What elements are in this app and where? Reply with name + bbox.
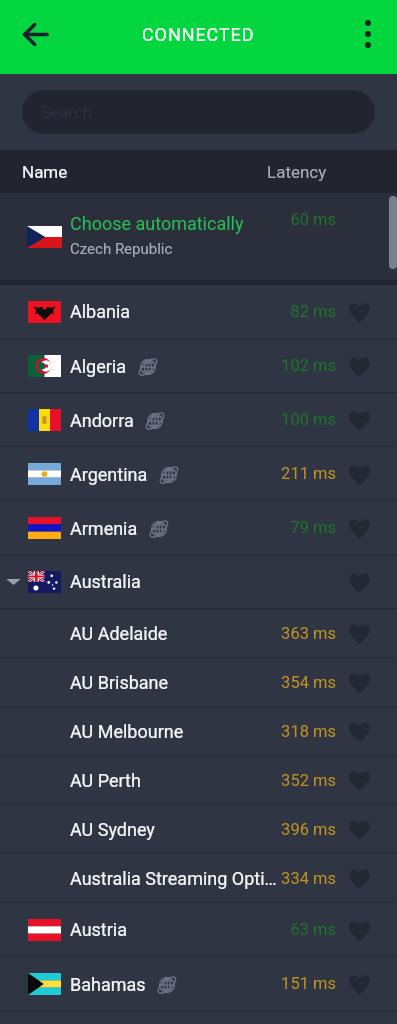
staticText: Czech Republic [70, 240, 173, 258]
staticText: Andorra [70, 410, 134, 431]
button[interactable]: AU Brisbane [0, 658, 397, 706]
staticText: Australia [70, 571, 141, 592]
staticText: 354 ms [281, 673, 336, 692]
button[interactable]: Search [22, 90, 375, 134]
staticText: Armenia [70, 518, 138, 539]
staticText: 63 ms [290, 920, 336, 939]
staticText: 82 ms [290, 302, 336, 321]
button[interactable]: Favorite [340, 859, 378, 897]
button[interactable]: Favorite [340, 293, 378, 331]
staticText: AU Adelaide [70, 623, 168, 644]
button[interactable]: AU Perth [0, 756, 397, 804]
staticText: 318 ms [281, 722, 336, 741]
button[interactable]: Favorite [340, 911, 378, 949]
staticText: Australia Streaming Optimi… [70, 868, 282, 889]
staticText: AU Sydney [70, 819, 155, 840]
staticText: 352 ms [281, 771, 336, 790]
button[interactable]: Favorite [340, 455, 378, 493]
staticText: 334 ms [281, 869, 336, 888]
button[interactable]: Favorite [340, 761, 378, 799]
staticText: Argentina [70, 464, 148, 485]
button[interactable]: Favorite [340, 965, 378, 1003]
staticText: 102 ms [281, 356, 336, 375]
staticText: Bahamas [70, 974, 146, 995]
staticText: 100 ms [281, 410, 336, 429]
button[interactable]: Favorite [340, 509, 378, 547]
button[interactable]: Choose automatically [0, 193, 397, 280]
button[interactable]: Favorite [340, 614, 378, 652]
button[interactable]: Bahamas [0, 957, 397, 1010]
staticText: 79 ms [290, 518, 336, 537]
staticText: 396 ms [281, 820, 336, 839]
button[interactable]: More options [344, 10, 392, 58]
staticText: Algeria [70, 356, 127, 377]
staticText: Search [40, 102, 93, 122]
button[interactable]: Albania [0, 285, 397, 338]
button[interactable]: Australia [0, 555, 397, 608]
button[interactable]: Australia Streaming Optimi… [0, 854, 397, 902]
staticText: CONNECTED [142, 24, 255, 45]
staticText: AU Perth [70, 770, 141, 791]
staticText: Albania [70, 301, 131, 322]
staticText: Choose automatically [70, 213, 244, 234]
staticText: AU Melbourne [70, 721, 184, 742]
button[interactable]: Favorite [340, 663, 378, 701]
button[interactable]: Back [11, 10, 59, 58]
button[interactable]: AU Sydney [0, 805, 397, 853]
button[interactable]: Favorite [340, 347, 378, 385]
button[interactable]: Algeria [0, 339, 397, 392]
button[interactable]: Argentina [0, 447, 397, 500]
staticText: AU Brisbane [70, 672, 169, 693]
staticText: Austria [70, 919, 128, 940]
button[interactable]: Austria [0, 903, 397, 956]
button[interactable]: Andorra [0, 393, 397, 446]
staticText: 211 ms [281, 464, 336, 483]
button[interactable]: Favorite [340, 563, 378, 601]
staticText: 60 ms [290, 210, 336, 229]
staticText: Latency [267, 162, 327, 182]
staticText: 363 ms [281, 624, 336, 643]
staticText: 151 ms [281, 974, 336, 993]
button[interactable]: AU Melbourne [0, 707, 397, 755]
staticText: Name [22, 162, 68, 182]
button[interactable]: Favorite [340, 401, 378, 439]
button[interactable]: AU Adelaide [0, 609, 397, 657]
button[interactable]: Favorite [340, 810, 378, 848]
button[interactable]: Armenia [0, 501, 397, 554]
button[interactable]: Favorite [340, 712, 378, 750]
